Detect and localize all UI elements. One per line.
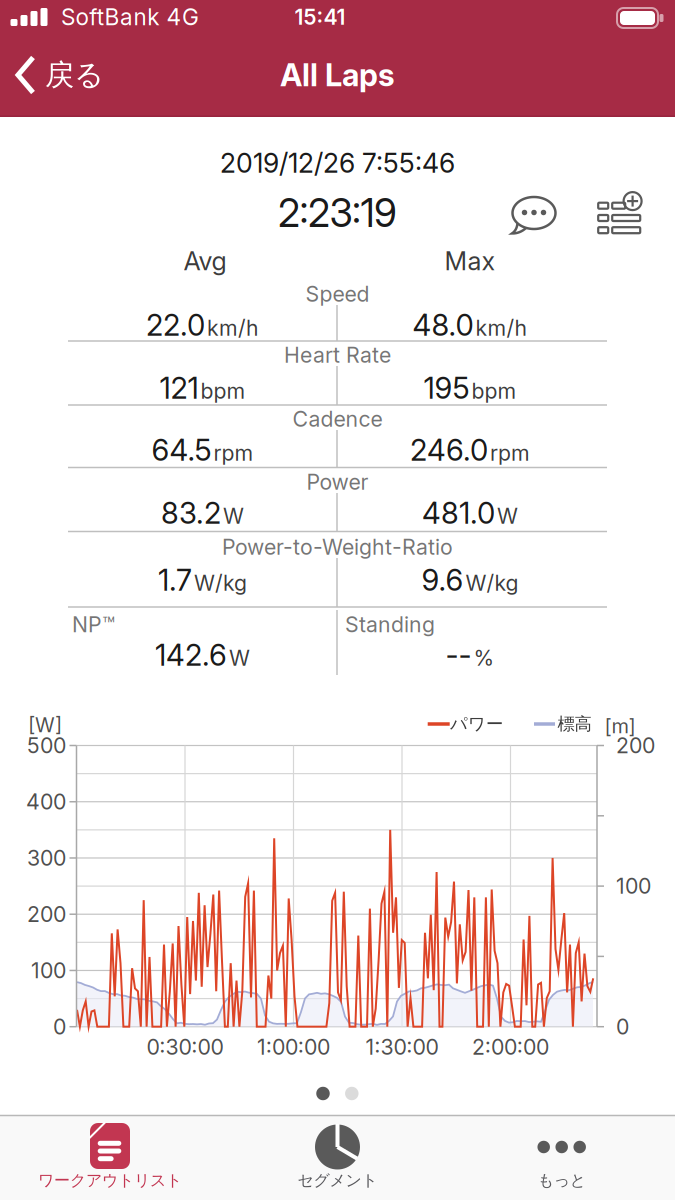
- staticText: 15:41: [294, 4, 345, 30]
- staticText: %: [473, 645, 494, 670]
- staticText: 9.6: [421, 563, 463, 597]
- staticText: W/kg: [194, 570, 247, 595]
- staticText: 標高: [557, 713, 591, 735]
- staticText: 2019/12/26 7:55:46: [220, 147, 455, 179]
- staticText: 481.0: [422, 496, 495, 530]
- staticText: ワークアウトリスト: [38, 1171, 182, 1190]
- staticText: km/h: [207, 315, 259, 340]
- button[interactable]: セグメント: [247, 1116, 427, 1200]
- staticText: W/kg: [465, 570, 518, 595]
- staticText: 0:30:00: [146, 1034, 223, 1060]
- staticText: 83.2: [161, 496, 221, 530]
- staticText: パワー: [450, 713, 503, 735]
- staticText: 48.0: [412, 308, 473, 342]
- staticText: W: [229, 645, 250, 670]
- staticText: 1:00:00: [257, 1034, 330, 1060]
- staticText: 300: [27, 845, 66, 871]
- staticText: 200: [27, 902, 66, 927]
- staticText: 戻る: [45, 57, 104, 93]
- staticText: Speed: [305, 281, 369, 307]
- button[interactable]: Add lap: [597, 195, 643, 237]
- staticText: Avg: [183, 246, 226, 276]
- staticText: 100: [31, 958, 66, 983]
- staticText: 500: [27, 733, 66, 758]
- staticText: All Laps: [280, 57, 395, 93]
- staticText: もっと: [538, 1171, 586, 1190]
- staticText: bpm: [471, 378, 516, 403]
- staticText: NP™: [72, 612, 115, 637]
- staticText: W: [223, 503, 244, 528]
- staticText: 121: [159, 371, 198, 405]
- staticText: W: [497, 503, 518, 528]
- staticText: 100: [616, 873, 651, 899]
- staticText: 22.0: [146, 308, 205, 342]
- staticText: 1.7: [158, 563, 192, 597]
- staticText: セグメント: [297, 1171, 377, 1190]
- staticText: 64.5: [151, 433, 211, 467]
- staticText: 2:23:19: [278, 190, 397, 236]
- button[interactable]: ワークアウトリスト: [5, 1116, 215, 1200]
- staticText: rpm: [213, 440, 253, 465]
- staticText: Standing: [345, 612, 435, 637]
- staticText: 400: [26, 789, 66, 814]
- staticText: --: [445, 638, 471, 672]
- button[interactable]: もっと: [482, 1116, 642, 1200]
- staticText: 200: [616, 733, 655, 758]
- staticText: Heart Rate: [284, 342, 391, 368]
- button[interactable]: 戻る: [16, 55, 104, 94]
- staticText: 1:30:00: [365, 1034, 438, 1060]
- staticText: [W]: [28, 713, 62, 737]
- staticText: Cadence: [292, 406, 382, 432]
- staticText: km/h: [475, 315, 527, 340]
- staticText: bpm: [200, 378, 245, 403]
- button[interactable]: Comment: [507, 192, 561, 240]
- staticText: 246.0: [410, 433, 488, 467]
- staticText: Max: [444, 246, 495, 276]
- staticText: 2:00:00: [472, 1034, 549, 1060]
- staticText: rpm: [490, 440, 530, 465]
- staticText: Power: [306, 469, 368, 495]
- staticText: SoftBank 4G: [61, 4, 199, 30]
- staticText: [m]: [604, 714, 635, 738]
- staticText: 0: [53, 1014, 66, 1039]
- staticText: 142.6: [155, 638, 227, 672]
- staticText: Power-to-Weight-Ratio: [222, 534, 453, 560]
- staticText: 0: [616, 1014, 629, 1039]
- staticText: 195: [423, 371, 469, 405]
